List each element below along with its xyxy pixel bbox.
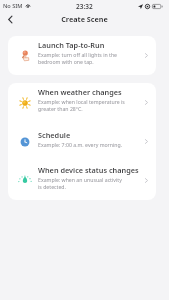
staticText: Launch Tap-to-Run [38,40,105,50]
button[interactable]: When device status changes [8,161,156,200]
staticText: Example: when an unusual activity is det… [38,176,122,190]
staticText: Schedule [38,130,71,140]
staticText: Example: when local temperature is great… [38,98,125,112]
staticText: Example: 7:00 a.m. every morning. [38,141,123,148]
staticText: Create Scene [61,14,108,24]
staticText: When weather changes [38,87,122,97]
button[interactable]: Back [3,12,18,27]
staticText: When device status changes [38,165,139,175]
button[interactable]: When weather changes [8,83,156,122]
staticText: No SIM [3,2,23,10]
staticText: Example: turn off all lights in the bedr… [38,51,118,65]
button[interactable]: Launch Tap-to-Run [8,36,156,75]
button[interactable]: Schedule [8,122,156,161]
staticText: 23:32 [76,2,93,11]
